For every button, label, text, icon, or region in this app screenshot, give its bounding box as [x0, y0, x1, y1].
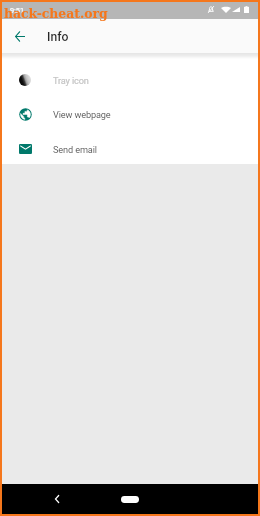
staticText: Tray icon	[53, 75, 89, 86]
button[interactable]: Back	[47, 489, 67, 509]
button[interactable]: Back	[10, 26, 30, 46]
button[interactable]: Send email	[2, 131, 258, 166]
button[interactable]: View webpage	[2, 96, 258, 131]
button[interactable]: Home	[121, 496, 139, 503]
staticText: View webpage	[53, 109, 111, 120]
staticText: Info	[47, 30, 69, 44]
button[interactable]: Tray icon	[2, 62, 258, 97]
staticText: 9:51	[10, 6, 25, 15]
staticText: Send email	[53, 144, 97, 155]
staticText: hack-cheat.org	[4, 6, 108, 21]
